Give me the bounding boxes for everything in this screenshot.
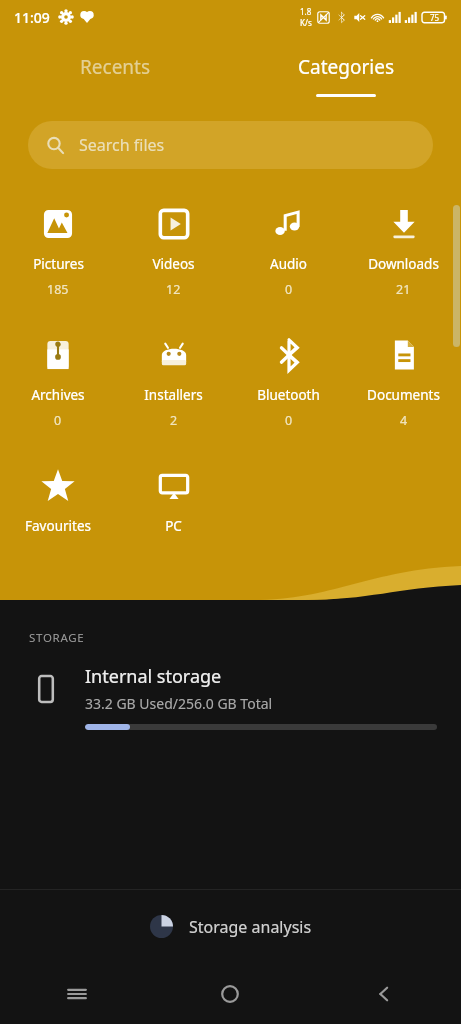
staticText: 12 xyxy=(166,281,181,298)
button[interactable]: Downloads xyxy=(346,199,461,304)
staticText: 0 xyxy=(285,412,293,429)
button[interactable]: Storage analysis xyxy=(0,890,461,963)
staticText: Documents xyxy=(367,386,440,404)
button[interactable]: Home xyxy=(153,963,307,1024)
staticText: Bluetooth xyxy=(257,386,320,404)
staticText: STORAGE xyxy=(29,630,85,646)
staticText: Storage analysis xyxy=(189,916,312,938)
button[interactable]: Recents xyxy=(54,48,177,86)
staticText: 33.2 GB Used/256.0 GB Total xyxy=(85,694,273,713)
staticText: Installers xyxy=(144,386,203,404)
staticText: 1.8 xyxy=(300,6,312,17)
staticText: Search files xyxy=(79,134,165,156)
button[interactable]: Audio xyxy=(231,199,346,304)
button[interactable]: Categories xyxy=(278,48,414,103)
staticText: 2 xyxy=(170,412,178,429)
staticText: PC xyxy=(165,517,182,535)
staticText: K/s xyxy=(300,17,312,28)
staticText: Videos xyxy=(152,255,195,273)
staticText: 11:09 xyxy=(14,8,50,27)
staticText: Internal storage xyxy=(85,664,222,689)
button[interactable]: Search files xyxy=(28,121,433,169)
staticText: Archives xyxy=(31,386,85,404)
staticText: 185 xyxy=(47,281,69,298)
staticText: Audio xyxy=(270,255,307,273)
button[interactable]: Recent apps xyxy=(0,963,153,1024)
staticText: 21 xyxy=(396,281,411,298)
staticText: Favourites xyxy=(25,517,91,535)
staticText: 4 xyxy=(400,412,408,429)
staticText: 75 xyxy=(430,12,440,23)
button[interactable]: Favourites xyxy=(0,461,116,541)
button[interactable]: Pictures xyxy=(0,199,116,304)
button[interactable]: Videos xyxy=(116,199,231,304)
staticText: Downloads xyxy=(368,255,439,273)
button[interactable]: Back xyxy=(307,963,461,1024)
staticText: Recents xyxy=(80,54,151,80)
button[interactable]: Documents xyxy=(346,330,461,435)
staticText: 0 xyxy=(285,281,293,298)
button[interactable]: PC xyxy=(116,461,231,541)
button[interactable]: Bluetooth xyxy=(231,330,346,435)
staticText: Pictures xyxy=(33,255,84,273)
button[interactable]: Internal storage xyxy=(0,664,461,730)
button[interactable]: Archives xyxy=(0,330,116,435)
staticText: Categories xyxy=(298,54,394,80)
button[interactable]: Installers xyxy=(116,330,231,435)
staticText: 0 xyxy=(54,412,62,429)
